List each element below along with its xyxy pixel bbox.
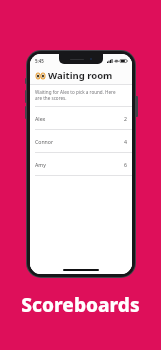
staticText: Scoreboards	[21, 292, 140, 318]
button[interactable]: Eyes	[30, 67, 132, 84]
staticText: Waiting for Alex to pick a round. Here a…	[35, 89, 123, 101]
other: Eyes	[36, 73, 45, 79]
button[interactable]: Connor	[30, 130, 132, 152]
staticText: Connor	[35, 138, 54, 145]
button[interactable]: Amy	[30, 153, 132, 175]
staticText: 6	[124, 161, 127, 168]
staticText: Waiting room	[48, 69, 113, 82]
staticText: Alex	[35, 115, 46, 122]
staticText: 2	[124, 115, 127, 122]
button[interactable]: Alex	[30, 107, 132, 129]
staticText: 5:45	[35, 58, 44, 64]
staticText: Amy	[35, 161, 46, 168]
staticText: 4	[124, 138, 127, 145]
